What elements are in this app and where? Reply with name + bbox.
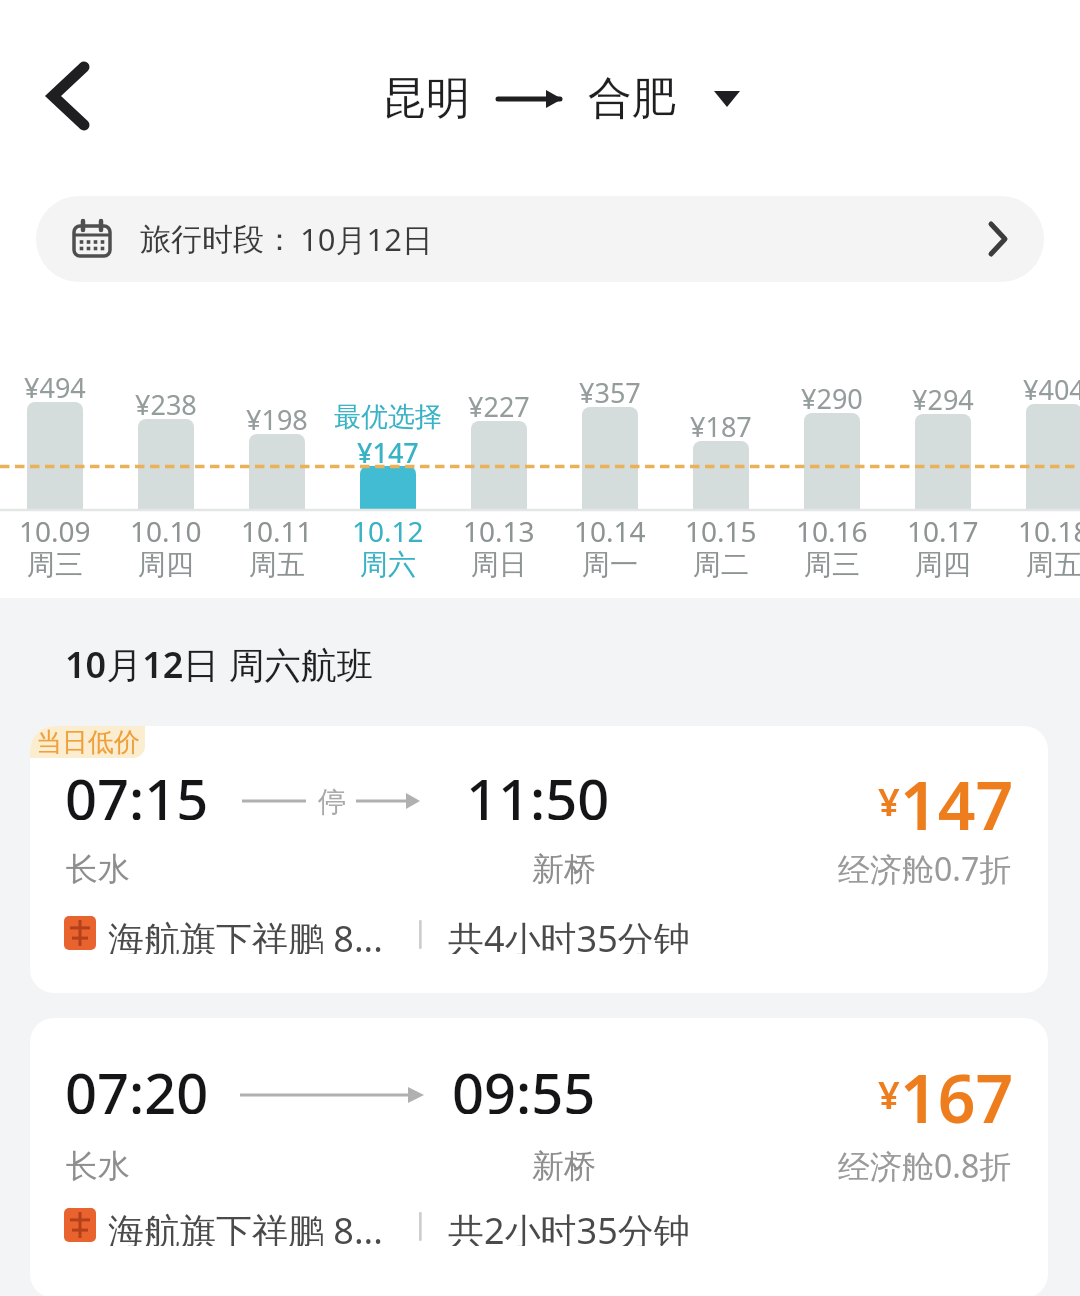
staticText: 周一 [582, 547, 638, 582]
staticText: 共4小时35分钟 [448, 914, 690, 954]
staticText: 147 [900, 759, 1014, 834]
button[interactable] [777, 346, 887, 586]
staticText: 经济舱0.8折 [838, 1144, 1012, 1184]
staticText: ¥404 [1023, 371, 1080, 407]
button[interactable]: 昆明 [382, 71, 740, 126]
staticText: 周四 [915, 547, 971, 582]
staticText: 周三 [27, 547, 83, 582]
staticText: ¥290 [801, 380, 863, 416]
staticText: 新桥 [532, 1146, 596, 1186]
button[interactable] [333, 346, 443, 586]
staticText: 10.11 [241, 512, 313, 548]
staticText: ¥227 [468, 388, 530, 424]
button[interactable] [30, 1018, 1048, 1296]
staticText: ¥357 [579, 374, 641, 410]
staticText: 10.18 [1018, 512, 1080, 548]
staticText: 10.09 [19, 512, 91, 548]
staticText: 周五 [1026, 547, 1080, 582]
staticText: 10.12 [352, 512, 424, 548]
staticText: 周二 [693, 547, 749, 582]
staticText: ¥187 [690, 408, 752, 444]
staticText: 当日低价 [36, 726, 140, 758]
staticText: 周三 [804, 547, 860, 582]
staticText: 旅行时段： [140, 220, 295, 259]
staticText: 10.15 [685, 512, 757, 548]
staticText: 周四 [138, 547, 194, 582]
staticText: 10月12日 [300, 218, 433, 260]
staticText: 新桥 [532, 849, 596, 889]
button[interactable] [888, 346, 998, 586]
staticText: ¥294 [912, 381, 974, 417]
staticText: ¥ [878, 1068, 900, 1120]
staticText: 经济舱0.7折 [838, 847, 1012, 887]
button[interactable]: 旅行时段： [36, 196, 1044, 282]
staticText: 10.13 [463, 512, 535, 548]
button[interactable] [999, 346, 1080, 586]
staticText: 长水 [66, 1146, 130, 1186]
staticText: 10月12日 周六航班 [65, 640, 373, 686]
staticText: 09:55 [452, 1054, 596, 1114]
staticText: 昆明 [382, 71, 470, 126]
staticText: 最优选择 [334, 400, 442, 434]
staticText: 停 [318, 784, 346, 819]
button[interactable] [0, 346, 110, 586]
staticText: ¥147 [357, 434, 419, 470]
staticText: 周日 [471, 547, 527, 582]
staticText: ¥198 [246, 401, 308, 437]
button[interactable] [30, 726, 1048, 993]
button[interactable] [666, 346, 776, 586]
button[interactable] [111, 346, 221, 586]
staticText: 167 [900, 1052, 1014, 1127]
staticText: 周五 [249, 547, 305, 582]
staticText: 07:15 [65, 760, 209, 820]
staticText: 07:20 [65, 1054, 209, 1114]
button[interactable] [444, 346, 554, 586]
staticText: 共2小时35分钟 [448, 1206, 690, 1246]
staticText: 10.16 [796, 512, 868, 548]
staticText: 10.17 [907, 512, 979, 548]
staticText: 海航旗下祥鹏 8... [108, 914, 383, 954]
staticText: 长水 [66, 849, 130, 889]
staticText: 丨 [406, 1208, 436, 1244]
staticText: 海航旗下祥鹏 8... [108, 1206, 383, 1246]
staticText: 10.10 [130, 512, 202, 548]
staticText: 11:50 [466, 760, 610, 820]
staticText: 合肥 [588, 71, 676, 126]
button[interactable] [45, 62, 91, 130]
staticText: ¥ [878, 775, 900, 827]
staticText: ¥494 [24, 369, 86, 405]
button[interactable] [555, 346, 665, 586]
staticText: 丨 [406, 916, 436, 952]
staticText: ¥238 [135, 386, 197, 422]
staticText: 10.14 [574, 512, 646, 548]
staticText: 周六 [360, 547, 416, 582]
button[interactable] [222, 346, 332, 586]
